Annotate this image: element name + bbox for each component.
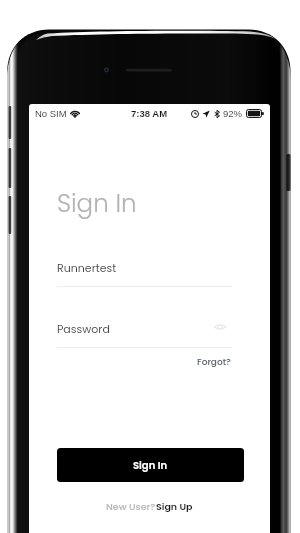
- staticText: Sign In: [133, 458, 168, 472]
- staticText: 92%: [223, 108, 243, 119]
- button[interactable]: Show password: [213, 322, 227, 332]
- button[interactable]: Sign Up: [156, 500, 193, 513]
- button[interactable]: Sign In: [57, 448, 244, 482]
- staticText: 7:38 AM: [131, 108, 168, 119]
- button[interactable]: Forgot?: [195, 354, 233, 371]
- staticText: Runnertest: [57, 260, 117, 275]
- button[interactable]: Runnertest: [57, 260, 232, 287]
- button[interactable]: Password: [57, 321, 232, 348]
- button[interactable]: New User?: [106, 500, 156, 513]
- staticText: Sign In: [57, 186, 137, 220]
- staticText: No SIM: [35, 108, 67, 119]
- staticText: Password: [57, 321, 110, 336]
